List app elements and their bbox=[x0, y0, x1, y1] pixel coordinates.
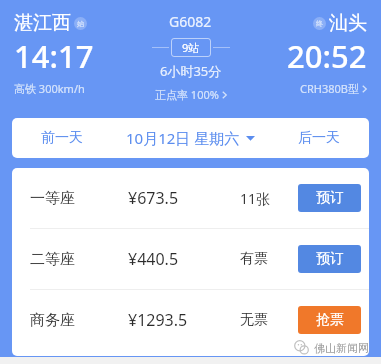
staticText: ¥440.5 bbox=[128, 248, 240, 270]
staticText: 湛江西 bbox=[14, 11, 71, 35]
staticText: 高铁 300km/h bbox=[14, 81, 85, 96]
staticText: 11张 bbox=[240, 189, 298, 208]
button[interactable]: 9站 bbox=[182, 40, 200, 55]
button[interactable]: 后一天 bbox=[269, 118, 369, 158]
staticText: 始 bbox=[77, 19, 84, 28]
button[interactable]: 预订 bbox=[298, 245, 361, 273]
staticText: 无票 bbox=[240, 311, 298, 329]
staticText: 前一天 bbox=[41, 129, 83, 147]
staticText: G6082 bbox=[169, 12, 212, 31]
staticText: 后一天 bbox=[298, 129, 340, 147]
staticText: 抢票 bbox=[316, 311, 344, 329]
button[interactable]: 抢票 bbox=[298, 306, 361, 334]
staticText: 9站 bbox=[182, 40, 200, 55]
button[interactable]: 二等座 bbox=[12, 229, 369, 289]
button[interactable]: 前一天 bbox=[12, 118, 112, 158]
staticText: 终 bbox=[316, 19, 323, 28]
staticText: ¥673.5 bbox=[128, 187, 240, 209]
staticText: 正点率 100% bbox=[155, 87, 219, 102]
staticText: 14:17 bbox=[14, 35, 94, 77]
staticText: 预订 bbox=[316, 189, 344, 207]
staticText: 商务座 bbox=[30, 311, 128, 330]
staticText: CRH380B型 bbox=[300, 81, 359, 96]
button[interactable]: 正点率 100% bbox=[155, 87, 227, 102]
button[interactable]: 预订 bbox=[298, 184, 361, 212]
staticText: 二等座 bbox=[30, 250, 128, 269]
button[interactable]: 10月12日 星期六 bbox=[112, 118, 269, 158]
staticText: 6小时35分 bbox=[160, 62, 222, 80]
staticText: ¥1293.5 bbox=[128, 309, 240, 331]
button[interactable]: 商务座 bbox=[12, 290, 369, 350]
staticText: 10月12日 星期六 bbox=[126, 128, 240, 148]
button[interactable]: 一等座 bbox=[12, 168, 369, 228]
staticText: 佛山新闻网 bbox=[314, 341, 369, 355]
staticText: 汕头 bbox=[329, 11, 367, 35]
button[interactable]: CRH380B型 bbox=[300, 81, 367, 96]
staticText: 一等座 bbox=[30, 189, 128, 208]
staticText: 有票 bbox=[240, 250, 298, 268]
staticText: 20:52 bbox=[287, 35, 367, 77]
other: 佛山新闻网 watermark bbox=[293, 339, 369, 356]
staticText: 预订 bbox=[316, 250, 344, 268]
